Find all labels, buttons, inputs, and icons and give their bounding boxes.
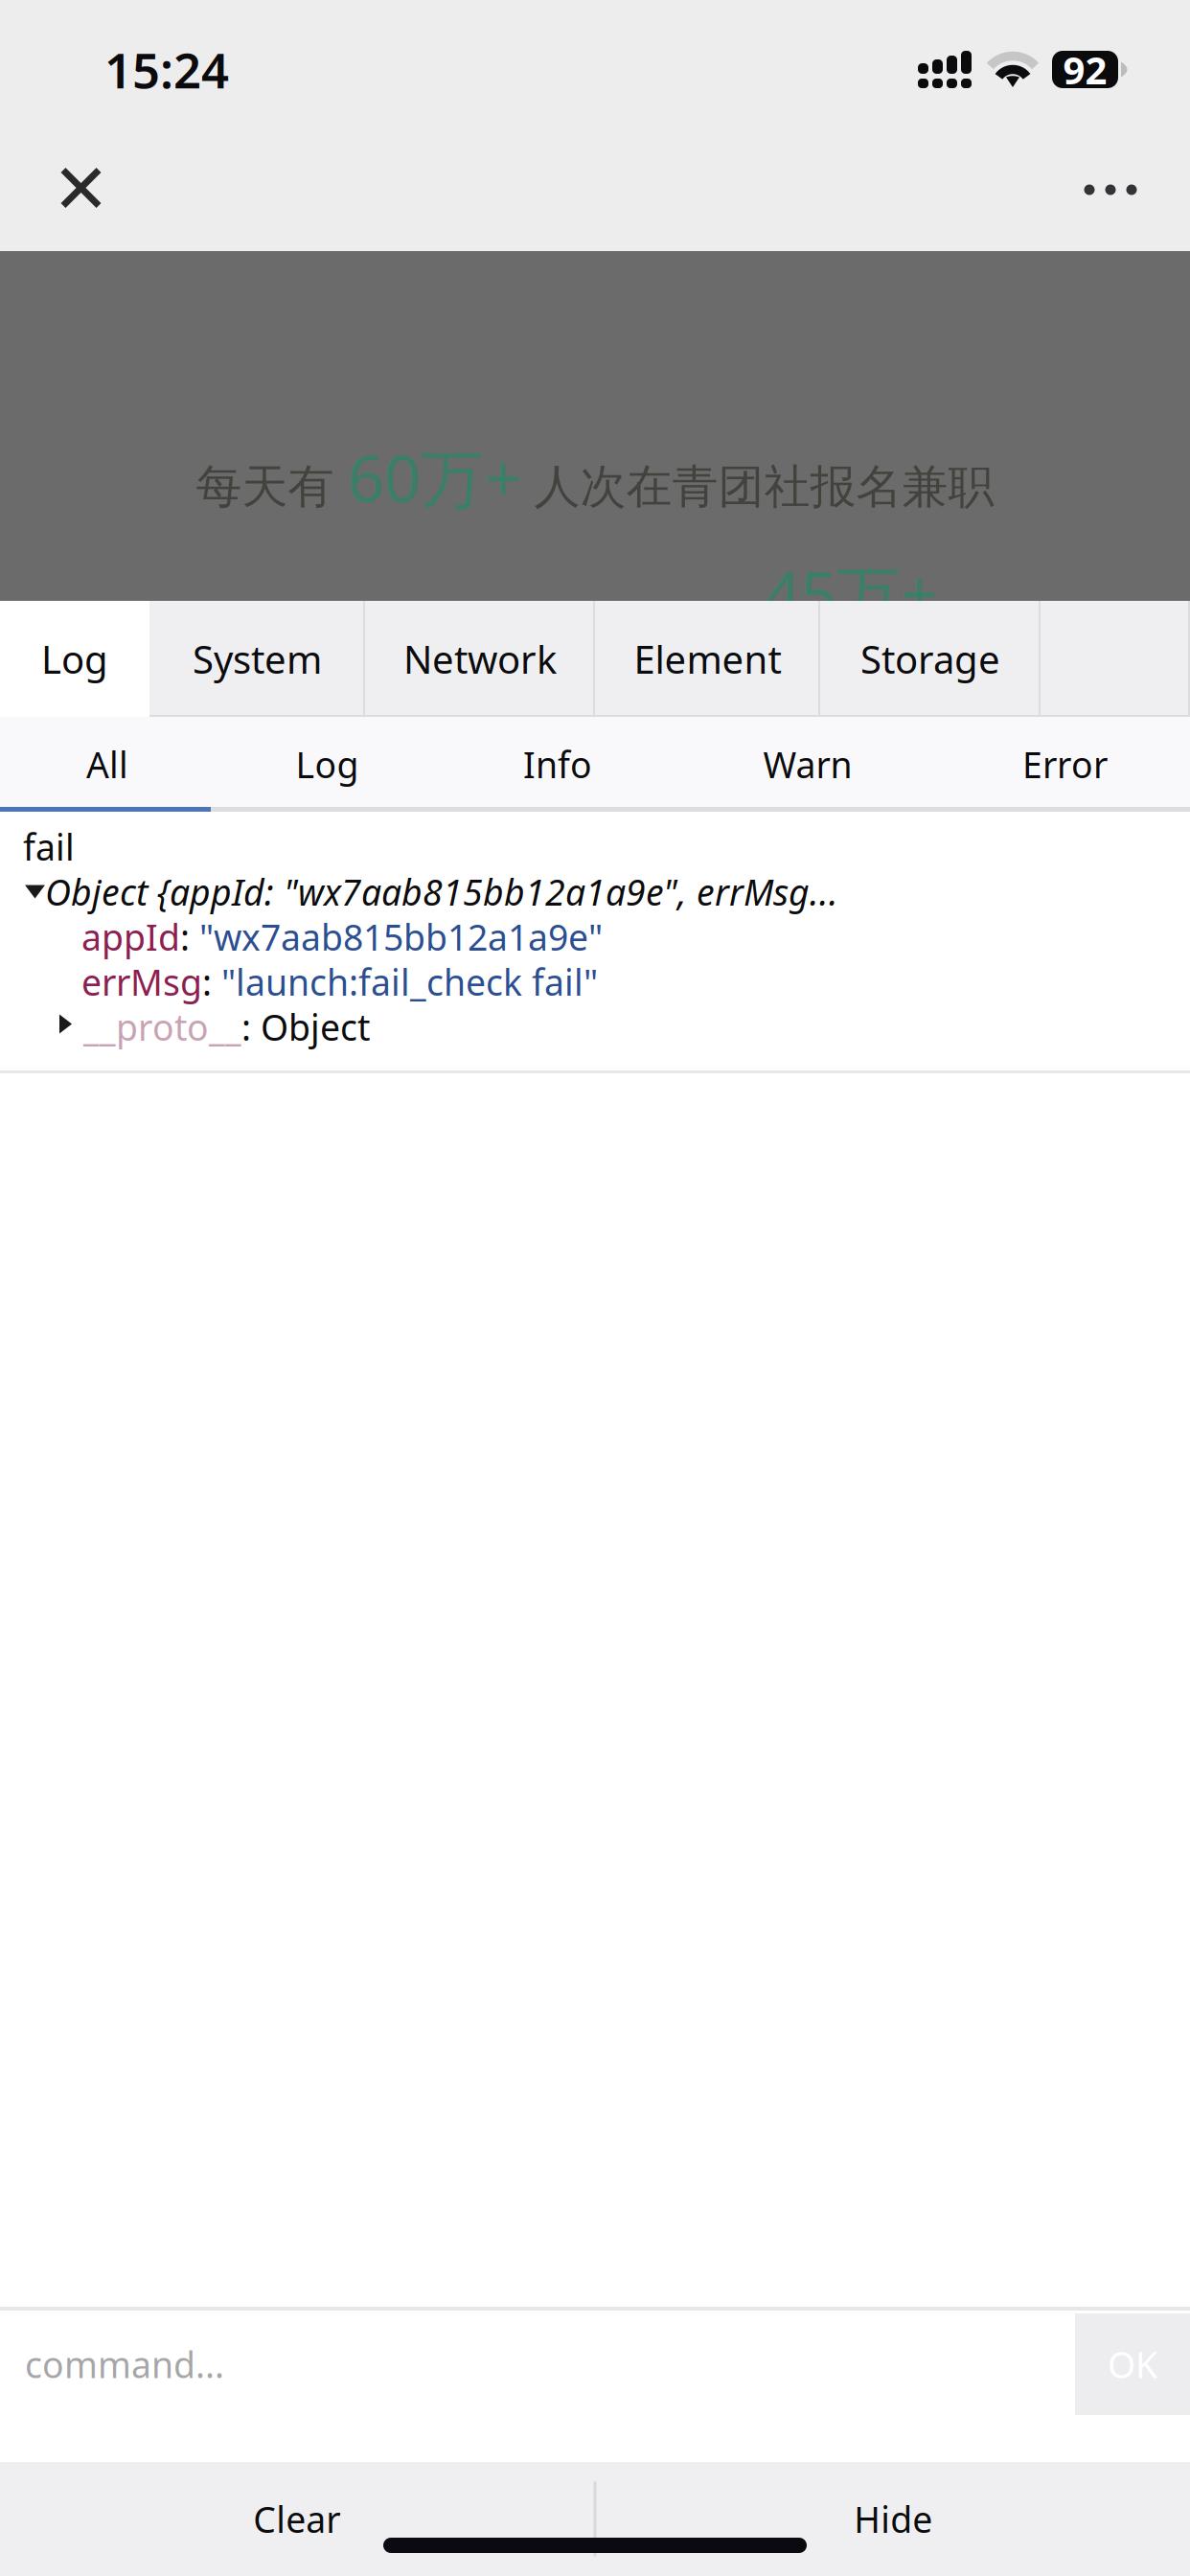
staticText: 每天有 bbox=[196, 459, 347, 515]
button[interactable]: All bbox=[0, 717, 215, 812]
staticText: Clear bbox=[253, 2495, 340, 2543]
staticText: Storage bbox=[860, 633, 1000, 684]
staticText: Log bbox=[41, 633, 108, 684]
staticText: : Object bbox=[241, 1003, 370, 1051]
staticText: System bbox=[193, 633, 322, 684]
staticText: 45万+ bbox=[764, 551, 937, 636]
staticText: Info bbox=[523, 741, 592, 788]
staticText: Element bbox=[634, 633, 781, 684]
staticText: errMsg bbox=[81, 958, 202, 1006]
button[interactable]: System bbox=[149, 601, 365, 717]
staticText: Warn bbox=[763, 741, 852, 788]
staticText: "launch:fail_check fail" bbox=[221, 958, 598, 1006]
staticText: 92 bbox=[1063, 44, 1107, 95]
button[interactable]: Network bbox=[365, 601, 595, 717]
button[interactable]: Close bbox=[20, 161, 142, 215]
staticText: Log bbox=[296, 741, 359, 788]
staticText: 15:24 bbox=[104, 37, 229, 102]
button[interactable]: Storage bbox=[820, 601, 1041, 717]
button[interactable]: Clear bbox=[0, 2462, 594, 2576]
staticText: appId bbox=[81, 913, 180, 961]
button[interactable]: Log bbox=[0, 601, 149, 717]
staticText: All bbox=[86, 741, 128, 788]
staticText: fail bbox=[23, 823, 75, 870]
button[interactable]: Info bbox=[440, 717, 675, 812]
button[interactable]: Element bbox=[595, 601, 820, 717]
staticText: Network bbox=[403, 633, 557, 684]
button[interactable]: Warn bbox=[675, 717, 940, 812]
button[interactable]: More options bbox=[1050, 161, 1171, 215]
button[interactable]: Hide bbox=[596, 2462, 1190, 2576]
staticText: 60万+ bbox=[347, 435, 521, 520]
staticText: Error bbox=[1022, 741, 1108, 788]
button[interactable]: OK bbox=[1075, 2313, 1190, 2415]
staticText: OK bbox=[1108, 2340, 1157, 2388]
staticText: : bbox=[180, 913, 199, 961]
staticText: __proto__ bbox=[83, 1003, 241, 1051]
button[interactable]: Error bbox=[940, 717, 1190, 812]
staticText: command... bbox=[25, 2340, 224, 2388]
staticText: Object {appId: "wx7aab815bb12a1a9e", err… bbox=[45, 867, 838, 916]
button[interactable] bbox=[1041, 601, 1190, 717]
staticText: "wx7aab815bb12a1a9e" bbox=[199, 913, 603, 961]
staticText: : bbox=[202, 958, 221, 1006]
staticText: Hide bbox=[854, 2495, 932, 2543]
button[interactable]: Log bbox=[215, 717, 440, 812]
staticText: 人次在青团社报名兼职 bbox=[521, 459, 994, 515]
